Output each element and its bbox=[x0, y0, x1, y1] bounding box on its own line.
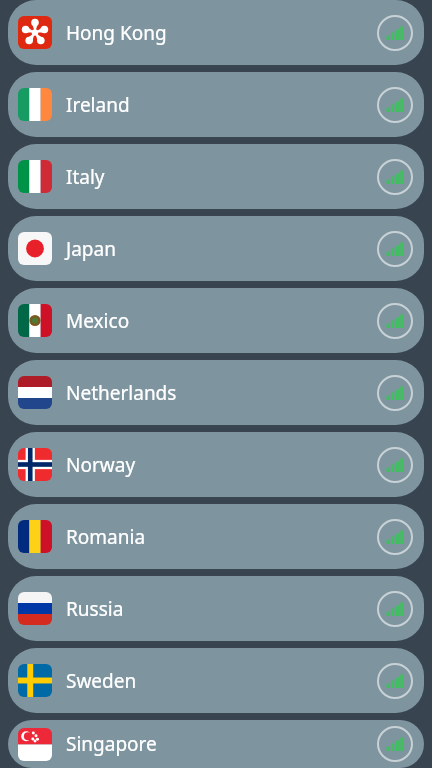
button[interactable]: Signal strength bbox=[376, 86, 414, 124]
button[interactable]: Singapore bbox=[8, 720, 424, 768]
staticText: Netherlands bbox=[66, 380, 177, 406]
button[interactable]: Russia bbox=[8, 576, 424, 641]
staticText: Russia bbox=[66, 596, 124, 622]
button[interactable]: Signal strength bbox=[376, 590, 414, 628]
button[interactable]: Signal strength bbox=[376, 158, 414, 196]
staticText: Hong Kong bbox=[66, 20, 167, 46]
button[interactable]: Mexico bbox=[8, 288, 424, 353]
button[interactable]: Ireland bbox=[8, 72, 424, 137]
button[interactable]: Signal strength bbox=[376, 518, 414, 556]
button[interactable]: Signal strength bbox=[376, 725, 414, 763]
button[interactable]: Romania bbox=[8, 504, 424, 569]
staticText: Mexico bbox=[66, 308, 130, 334]
button[interactable]: Japan bbox=[8, 216, 424, 281]
staticText: Romania bbox=[66, 524, 146, 550]
staticText: Singapore bbox=[66, 731, 157, 757]
staticText: Ireland bbox=[66, 92, 130, 118]
staticText: Italy bbox=[66, 164, 105, 190]
button[interactable]: Netherlands bbox=[8, 360, 424, 425]
staticText: Sweden bbox=[66, 668, 137, 694]
staticText: Japan bbox=[66, 236, 116, 262]
button[interactable]: Signal strength bbox=[376, 446, 414, 484]
button[interactable]: Signal strength bbox=[376, 230, 414, 268]
button[interactable]: Sweden bbox=[8, 648, 424, 713]
button[interactable]: Italy bbox=[8, 144, 424, 209]
button[interactable]: Signal strength bbox=[376, 14, 414, 52]
button[interactable]: Norway bbox=[8, 432, 424, 497]
staticText: Norway bbox=[66, 452, 136, 478]
button[interactable]: Signal strength bbox=[376, 662, 414, 700]
button[interactable]: Hong Kong bbox=[8, 0, 424, 65]
button[interactable]: Signal strength bbox=[376, 374, 414, 412]
button[interactable]: Signal strength bbox=[376, 302, 414, 340]
